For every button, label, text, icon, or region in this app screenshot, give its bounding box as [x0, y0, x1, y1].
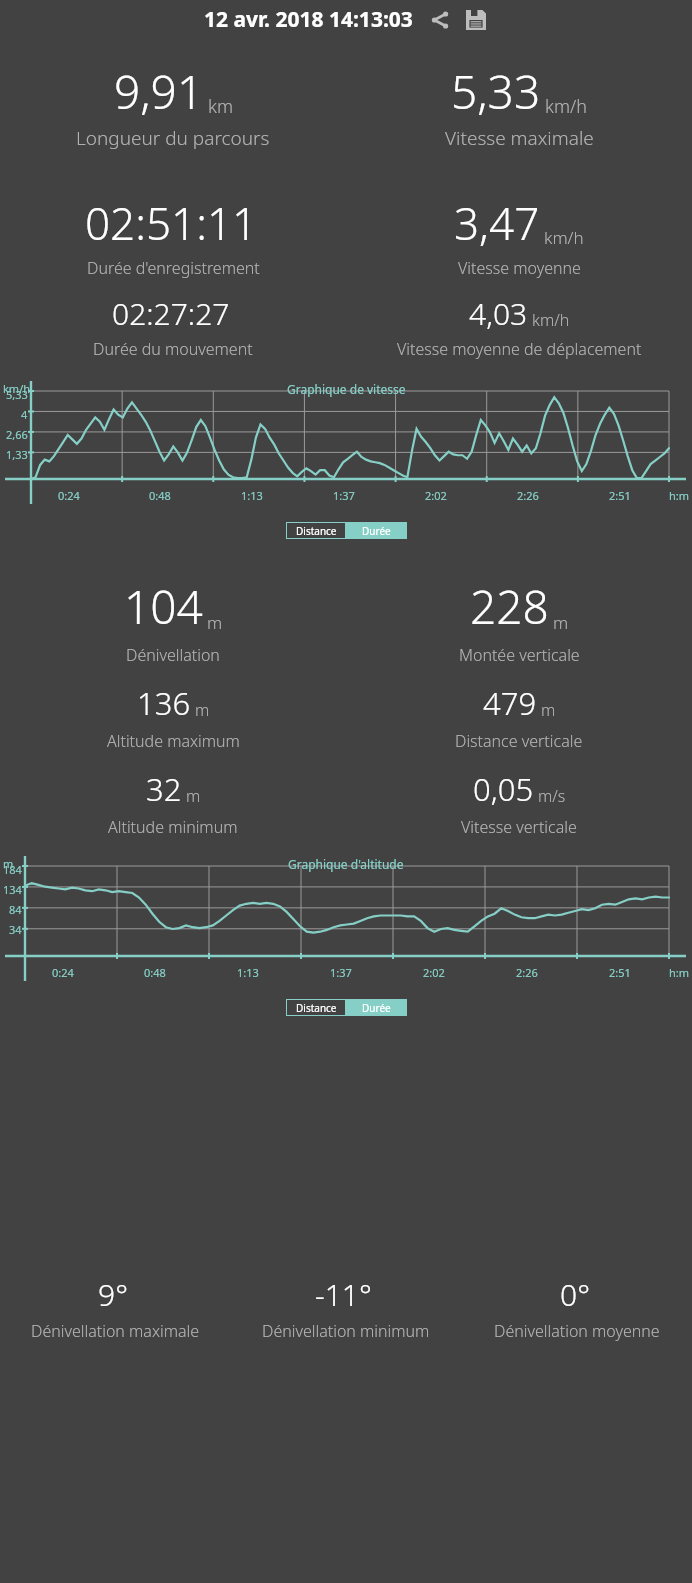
staticText: 84 [9, 902, 22, 917]
button[interactable]: Distance [287, 523, 345, 538]
staticText: 0:48 [144, 965, 166, 980]
staticText: 4,03 [469, 293, 528, 334]
staticText: km [208, 94, 233, 119]
staticText: 0:48 [149, 488, 171, 503]
staticText: Montée verticale [459, 644, 580, 666]
staticText: Vitesse maximale [445, 125, 594, 151]
staticText: 0° [560, 1274, 590, 1315]
staticText: Dénivellation minimum [262, 1320, 430, 1342]
staticText: Durée d'enregistrement [87, 257, 260, 279]
staticText: Graphique de vitesse [287, 381, 406, 397]
staticText: km/h [3, 381, 31, 396]
staticText: 5,33 [6, 387, 28, 402]
staticText: 134 [3, 882, 22, 897]
staticText: Distance [296, 524, 337, 538]
staticText: 1:13 [241, 488, 263, 503]
staticText: 3,47 [454, 193, 540, 253]
staticText: Longueur du parcours [76, 125, 270, 151]
staticText: 136 [137, 682, 191, 724]
button[interactable]: Durée [346, 522, 407, 539]
staticText: km/h [544, 226, 584, 249]
staticText: Dénivellation moyenne [494, 1320, 660, 1342]
staticText: 2:26 [516, 965, 538, 980]
staticText: 104 [124, 575, 203, 638]
staticText: 2:51 [609, 488, 631, 503]
staticText: 2:26 [517, 488, 539, 503]
staticText: 1:13 [237, 965, 259, 980]
staticText: 0:24 [52, 965, 74, 980]
staticText: h:m [669, 965, 690, 980]
staticText: Durée [362, 524, 391, 538]
staticText: 0,05 [473, 768, 534, 810]
staticText: Dénivellation [126, 644, 220, 666]
staticText: 0:24 [58, 488, 80, 503]
staticText: 02:51:11 [85, 193, 258, 253]
button[interactable]: Save [463, 7, 489, 33]
staticText: 228 [470, 575, 549, 638]
staticText: m/s [538, 785, 566, 807]
button[interactable]: Durée [346, 999, 407, 1016]
staticText: 9° [98, 1274, 128, 1315]
staticText: 2:02 [423, 965, 445, 980]
staticText: Distance [296, 1001, 337, 1015]
staticText: 34 [9, 922, 22, 937]
staticText: Durée du mouvement [93, 338, 253, 360]
staticText: m [207, 611, 223, 634]
staticText: Altitude maximum [107, 730, 240, 752]
staticText: Vitesse moyenne [458, 257, 581, 279]
staticText: 479 [483, 682, 537, 724]
staticText: 9,91 [114, 60, 204, 123]
staticText: 1:37 [330, 965, 352, 980]
staticText: m [553, 611, 569, 634]
button[interactable]: Distance [287, 1000, 345, 1015]
staticText: m [3, 856, 14, 871]
button[interactable]: Share [427, 7, 453, 33]
staticText: 4 [21, 407, 28, 422]
staticText: m [541, 699, 556, 721]
staticText: Vitesse verticale [461, 816, 577, 838]
staticText: m [195, 699, 210, 721]
staticText: Durée [362, 1001, 391, 1015]
staticText: -11° [315, 1274, 372, 1315]
staticText: Distance verticale [455, 730, 583, 752]
staticText: 12 avr. 2018 14:13:03 [204, 5, 413, 34]
staticText: 1:37 [333, 488, 355, 503]
staticText: Dénivellation maximale [31, 1320, 200, 1342]
staticText: 2:51 [609, 965, 631, 980]
staticText: Graphique d'altitude [288, 856, 404, 872]
staticText: 5,33 [451, 60, 541, 123]
staticText: km/h [532, 309, 570, 331]
staticText: 1,33 [6, 447, 28, 462]
staticText: 32 [146, 768, 182, 810]
staticText: 2,66 [6, 427, 28, 442]
staticText: h:m [669, 488, 690, 503]
staticText: Vitesse moyenne de déplacement [397, 338, 642, 360]
staticText: 02:27:27 [112, 293, 230, 334]
staticText: Altitude minimum [108, 816, 238, 838]
staticText: 2:02 [425, 488, 447, 503]
staticText: 184 [3, 862, 22, 877]
staticText: km/h [545, 94, 587, 119]
staticText: m [186, 785, 201, 807]
